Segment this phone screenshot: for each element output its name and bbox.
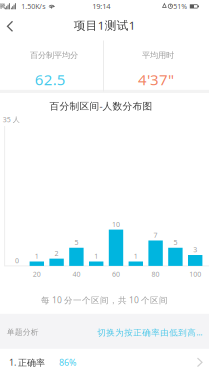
staticText: 3 — [193, 245, 197, 254]
staticText: 62.5 — [35, 69, 66, 90]
staticText: 切换为按正确率由低到高排序 — [97, 326, 203, 338]
staticText: 项目1测试1 — [74, 17, 136, 33]
staticText: 100 — [189, 269, 201, 279]
staticText: 80 — [152, 269, 160, 279]
staticText: 40 — [72, 269, 80, 279]
staticText: 20 — [33, 269, 41, 279]
staticText: 1.50K/s — [21, 1, 45, 11]
staticText: 腾 — [0, 2, 5, 10]
staticText: 10 — [112, 219, 120, 229]
staticText: 1. 正确率 — [9, 356, 45, 368]
staticText: 2 — [55, 248, 59, 258]
staticText: 19:14 — [92, 1, 110, 11]
staticText: 平均用时 — [142, 50, 174, 60]
staticText: 0 — [15, 256, 19, 265]
staticText: 7 — [154, 230, 158, 240]
staticText: 1 — [94, 251, 98, 261]
button[interactable]: 1. 正确率 — [0, 349, 209, 376]
staticText: 4'37" — [138, 69, 174, 90]
button[interactable]: 切换为按正确率由低到高排序 — [97, 315, 209, 350]
staticText: 百分制平均分 — [30, 50, 78, 60]
staticText: 每 10 分一个区间，共 10 个区间 — [41, 294, 168, 306]
staticText: 百分制区间-人数分布图 — [49, 99, 152, 112]
button[interactable]: 返回 — [0, 13, 21, 39]
button[interactable]: 单题分析 — [0, 315, 51, 350]
staticText: 35 人 — [3, 115, 20, 124]
staticText: 1 — [35, 251, 39, 261]
staticText: 51% — [173, 1, 187, 11]
staticText: 单题分析 — [7, 327, 39, 337]
staticText: 5 — [173, 238, 177, 247]
staticText: 1 — [134, 251, 138, 261]
staticText: 86% — [59, 356, 76, 368]
staticText: 5 — [74, 238, 78, 247]
staticText: 60 — [112, 269, 120, 279]
